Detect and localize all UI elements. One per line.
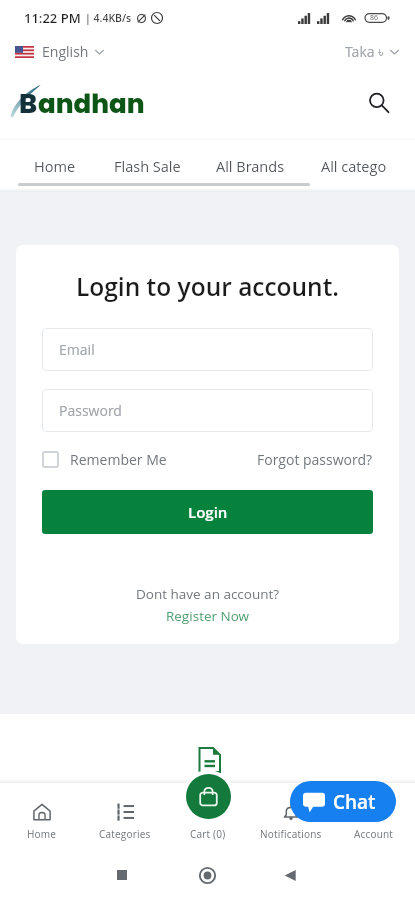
button[interactable]: Cart (0) <box>166 783 249 841</box>
staticText: Password <box>59 401 122 420</box>
button[interactable]: Register Now <box>16 607 399 625</box>
button[interactable]: Password <box>42 389 373 432</box>
staticText: | 4.4KB/s <box>85 11 132 25</box>
staticText: Home <box>27 827 57 841</box>
button[interactable]: Chat <box>290 781 396 822</box>
staticText: Taka ৳ <box>345 42 384 61</box>
staticText: B <box>19 85 38 123</box>
button[interactable]: Email <box>42 328 373 371</box>
staticText: Login <box>188 502 228 522</box>
staticText: English <box>42 42 89 61</box>
staticText: Account <box>354 827 394 841</box>
button[interactable]: Back <box>274 859 306 891</box>
button[interactable]: Home <box>34 157 76 177</box>
button[interactable]: Home <box>191 859 223 891</box>
button[interactable]: All Brands <box>216 157 285 177</box>
button[interactable]: Account <box>332 783 415 841</box>
staticText: Notifications <box>260 827 322 841</box>
button[interactable]: Notifications <box>249 783 332 841</box>
staticText: Login to your account. <box>16 270 399 303</box>
staticText: Categories <box>99 827 151 841</box>
button[interactable]: Home <box>0 783 83 841</box>
button[interactable]: Login <box>42 490 373 534</box>
button[interactable]: All catego <box>321 157 387 177</box>
staticText: andhan <box>38 86 145 122</box>
button[interactable]: Search <box>360 84 398 122</box>
button[interactable]: Remember Me <box>42 450 167 469</box>
staticText: Chat <box>333 789 376 815</box>
button[interactable]: Taka ৳ <box>345 42 399 61</box>
staticText: Dont have an account? <box>16 585 399 603</box>
button[interactable]: Cart <box>186 774 231 819</box>
button[interactable]: English <box>15 42 104 61</box>
button[interactable]: Forgot password? <box>257 450 373 469</box>
staticText: Remember Me <box>70 450 167 469</box>
staticText: Cart (0) <box>190 827 226 841</box>
staticText: Email <box>59 340 95 359</box>
button[interactable]: Flash Sale <box>114 157 181 177</box>
staticText: 11:22 PM <box>24 9 81 27</box>
button[interactable]: Recents <box>106 859 138 891</box>
button[interactable]: Categories <box>83 783 166 841</box>
staticText: 86 <box>370 13 379 23</box>
